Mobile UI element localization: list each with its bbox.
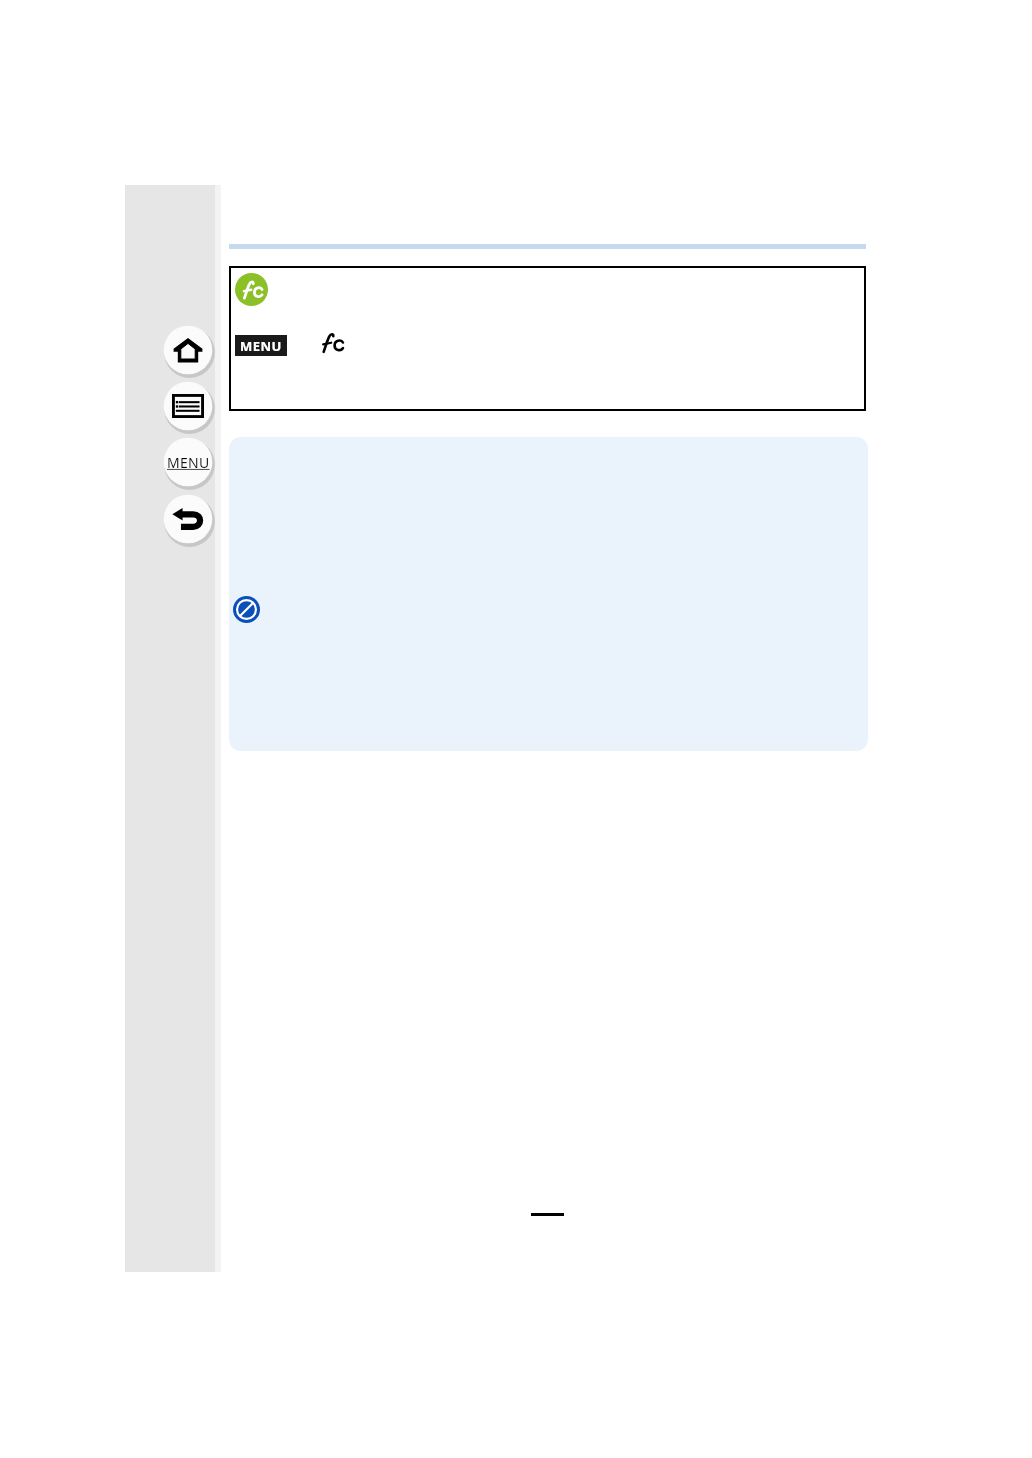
staticText: MENU xyxy=(167,453,210,472)
button[interactable]: Menu xyxy=(161,435,215,489)
button[interactable]: Back xyxy=(161,492,215,546)
button[interactable]: Table of contents xyxy=(161,379,215,433)
staticText: MENU xyxy=(240,337,282,355)
button[interactable]: Home xyxy=(161,323,215,377)
